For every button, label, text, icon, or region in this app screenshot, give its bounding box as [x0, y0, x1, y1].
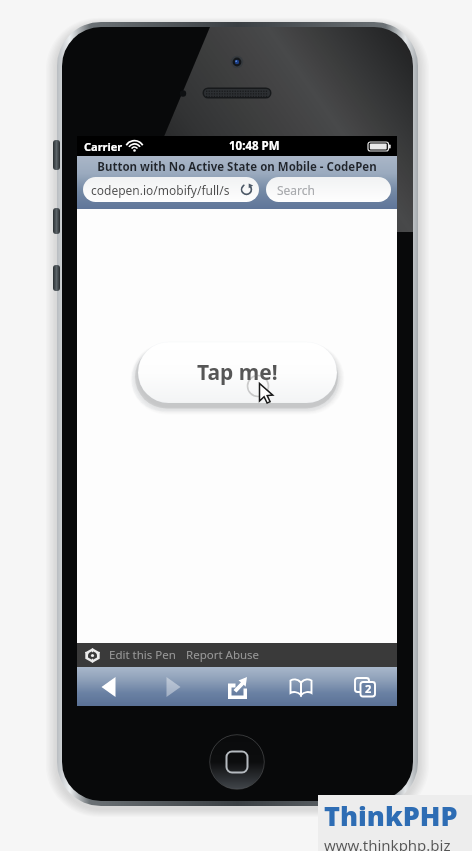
staticText: www.thinkphp.biz: [324, 835, 451, 851]
other: Reload: [240, 183, 253, 196]
staticText: Search: [277, 182, 315, 198]
button[interactable]: Tabs: 2: [333, 667, 397, 706]
button[interactable]: Report Abuse: [186, 647, 260, 663]
other: CodePen: [85, 648, 100, 663]
button[interactable]: Share: [205, 667, 269, 706]
staticText: codepen.io/mobify/full/s: [91, 182, 230, 198]
button[interactable]: codepen.io/mobify/full/s: [83, 177, 259, 202]
staticText: Button with No Active State on Mobile - …: [97, 159, 377, 175]
staticText: ThinkPHP: [324, 797, 458, 834]
staticText: Carrier: [84, 139, 123, 154]
button[interactable]: Edit this Pen: [109, 647, 176, 663]
staticText: 2: [365, 681, 372, 696]
button[interactable]: Forward: [141, 667, 205, 706]
button[interactable]: Bookmarks: [269, 667, 333, 706]
staticText: Tap me!: [197, 358, 278, 387]
button[interactable]: Search: [266, 177, 391, 202]
staticText: 10:48 PM: [229, 138, 280, 154]
staticText: Report Abuse: [186, 647, 260, 663]
button[interactable]: Back: [77, 667, 141, 706]
button[interactable]: Tap me!: [138, 342, 337, 403]
staticText: Edit this Pen: [109, 647, 176, 663]
